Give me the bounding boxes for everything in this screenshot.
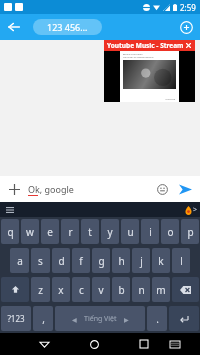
button[interactable]: v (92, 277, 110, 302)
button[interactable]: 123 456… (33, 19, 102, 35)
staticText: q (7, 225, 14, 239)
button[interactable]: w (21, 219, 39, 244)
button[interactable]: r (61, 219, 79, 244)
button[interactable]: Add (176, 17, 196, 37)
button[interactable]: ◀ (55, 306, 145, 331)
other: Close ad (185, 42, 192, 49)
staticText: , (42, 312, 45, 326)
button[interactable]: Back (34, 334, 54, 354)
staticText: y (107, 225, 113, 239)
button[interactable]: s (31, 248, 50, 273)
staticText: Tiếng Việt (84, 314, 117, 324)
button[interactable]: ?123 (1, 306, 31, 331)
button[interactable]: j (132, 248, 150, 273)
staticText: ?123 (7, 313, 25, 324)
staticText: r (68, 225, 73, 239)
staticText: k (158, 254, 164, 268)
button[interactable]: b (112, 277, 130, 302)
staticText: t (88, 225, 92, 239)
staticText: o (167, 225, 174, 239)
staticText: j (140, 254, 143, 268)
staticText: w (26, 225, 34, 239)
button[interactable]: Attach (6, 181, 22, 197)
button[interactable]: e (41, 219, 59, 244)
button[interactable]: Switch keyboard (165, 334, 185, 354)
button[interactable]: i (141, 219, 159, 244)
staticText: g (98, 254, 105, 268)
button[interactable]: y (101, 219, 119, 244)
staticText: f (79, 254, 83, 268)
staticText: YouTube (165, 97, 176, 100)
button[interactable]: l (172, 248, 190, 273)
button[interactable]: Emoji (154, 181, 170, 197)
staticText: 2:59 (180, 2, 196, 13)
staticText: l (180, 254, 183, 268)
staticText: Ok, google (28, 183, 74, 195)
button[interactable]: m (152, 277, 170, 302)
staticText: h (118, 254, 125, 268)
button[interactable]: z (31, 277, 50, 302)
staticText: ▶ (124, 316, 129, 323)
button[interactable]: x (52, 277, 70, 302)
button[interactable]: d (52, 248, 70, 273)
staticText: . (156, 312, 159, 326)
button[interactable]: Backspace (172, 277, 199, 302)
staticText: p (187, 225, 194, 239)
button[interactable]: Recents (134, 334, 154, 354)
staticText: z (38, 283, 43, 297)
button[interactable]: Back (4, 17, 24, 37)
button[interactable]: Sticker (184, 206, 193, 215)
button[interactable]: c (72, 277, 90, 302)
button[interactable]: k (152, 248, 170, 273)
button[interactable]: . (147, 306, 167, 331)
button[interactable]: Menu (4, 204, 16, 216)
staticText: i (149, 225, 152, 239)
button[interactable]: Send (176, 180, 194, 198)
button[interactable]: f (72, 248, 90, 273)
button[interactable]: n (132, 277, 150, 302)
staticText: BEHIND THE SCENES THE STORY OF WHERE I B… (123, 53, 154, 59)
button[interactable]: Home (84, 334, 104, 354)
button[interactable]: g (92, 248, 110, 273)
staticText: u (127, 225, 134, 239)
button[interactable]: o (161, 219, 179, 244)
staticText: x (58, 283, 64, 297)
staticText: m (156, 283, 166, 297)
staticText: b (118, 283, 125, 297)
staticText: n (138, 283, 145, 297)
button[interactable]: p (181, 219, 199, 244)
staticText: e (47, 225, 53, 239)
button[interactable]: t (81, 219, 99, 244)
button[interactable]: Youtube Music - Stream (104, 40, 195, 51)
staticText: Youtube Music - Stream (107, 41, 185, 50)
button[interactable]: Ok, google (28, 183, 154, 196)
staticText: c (79, 283, 84, 297)
staticText: d (58, 254, 65, 268)
button[interactable]: Enter (169, 306, 199, 331)
staticText: a (17, 254, 23, 268)
staticText: v (98, 283, 104, 297)
button[interactable]: BEHIND THE SCENES THE STORY OF WHERE I B… (104, 51, 195, 102)
button[interactable]: h (112, 248, 130, 273)
staticText: ◀ (72, 316, 77, 323)
staticText: > (193, 205, 198, 215)
button[interactable]: q (1, 219, 19, 244)
button[interactable]: , (33, 306, 53, 331)
staticText: s (38, 254, 43, 268)
button[interactable]: Shift (1, 277, 29, 302)
button[interactable]: u (121, 219, 139, 244)
staticText: 123 456… (47, 21, 88, 33)
button[interactable]: a (10, 248, 29, 273)
